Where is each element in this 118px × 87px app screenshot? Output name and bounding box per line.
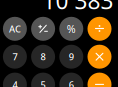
- staticText: 10 383: [42, 0, 113, 16]
- button[interactable]: 7: [3, 45, 27, 69]
- button[interactable]: 6: [59, 73, 83, 87]
- button[interactable]: Divide: [87, 17, 111, 41]
- button[interactable]: Multiply: [87, 45, 111, 69]
- staticText: 5: [41, 78, 46, 87]
- staticText: 8: [41, 50, 46, 63]
- button[interactable]: 4: [3, 73, 27, 87]
- button[interactable]: 5: [31, 73, 55, 87]
- staticText: 6: [69, 78, 74, 87]
- button[interactable]: AC: [3, 17, 27, 41]
- button[interactable]: 8: [31, 45, 55, 69]
- staticText: 7: [12, 50, 17, 63]
- button[interactable]: Minus: [87, 73, 111, 87]
- staticText: AC: [9, 23, 21, 35]
- staticText: 9: [69, 50, 74, 63]
- staticText: 4: [12, 78, 17, 87]
- staticText: %: [67, 22, 76, 36]
- button[interactable]: %: [59, 17, 83, 41]
- button[interactable]: Plus or minus: [31, 17, 55, 41]
- button[interactable]: 9: [59, 45, 83, 69]
